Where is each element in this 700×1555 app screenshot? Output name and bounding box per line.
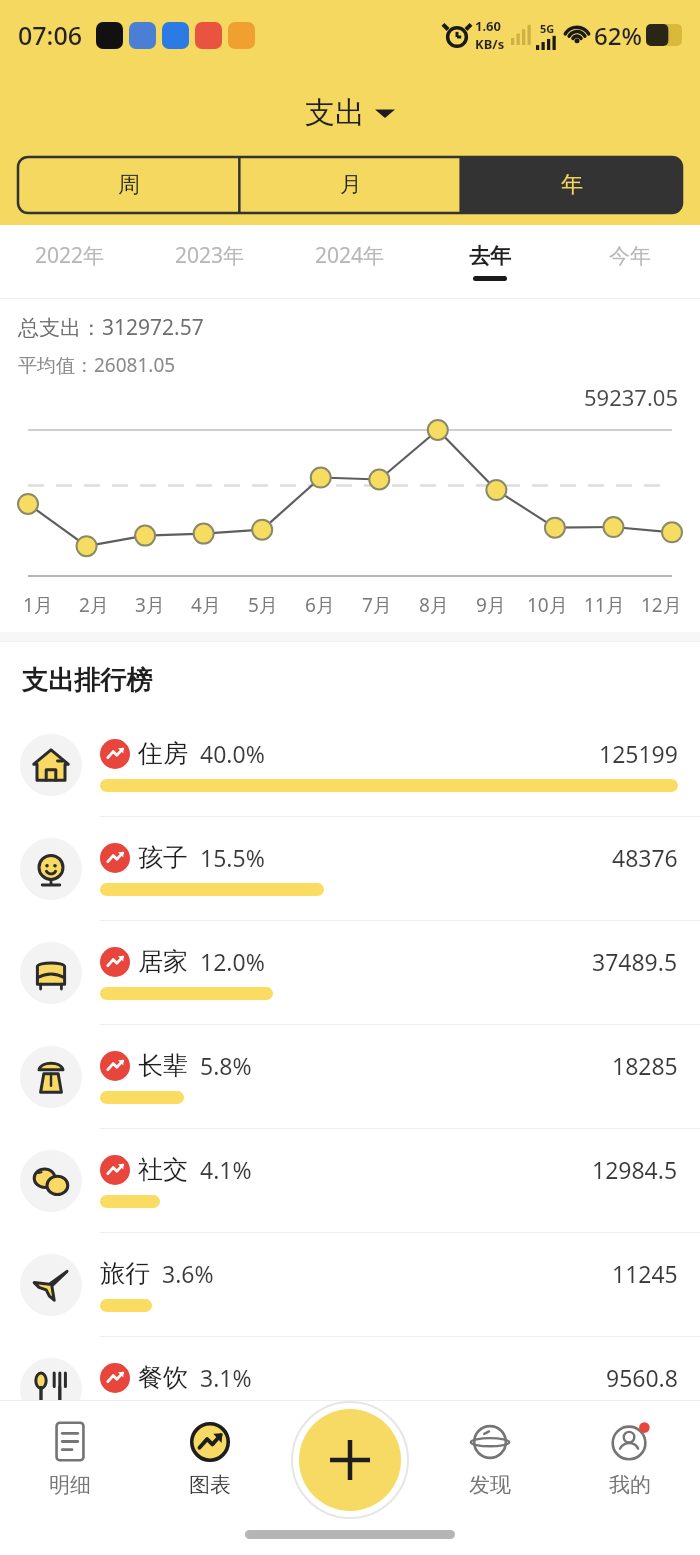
- staticText: 餐饮: [138, 1362, 188, 1393]
- staticText: 3.1%: [200, 1362, 252, 1393]
- staticText: 去年: [469, 243, 511, 269]
- staticText: 我的: [609, 1472, 651, 1498]
- staticText: 孩子: [138, 842, 188, 873]
- staticText: 12月: [641, 592, 682, 618]
- button[interactable]: 长辈: [0, 1025, 700, 1128]
- staticText: 平均值：26081.05: [18, 352, 176, 378]
- staticText: 年: [561, 171, 583, 199]
- staticText: 5G: [540, 21, 555, 36]
- button[interactable]: 支出: [0, 94, 700, 132]
- button[interactable]: 图表: [140, 1400, 280, 1535]
- staticText: 12984.5: [592, 1154, 678, 1185]
- staticText: 1月: [23, 592, 53, 618]
- button[interactable]: 记账: [280, 1400, 420, 1535]
- staticText: 月: [340, 171, 362, 199]
- staticText: 37489.5: [592, 946, 678, 977]
- staticText: 今年: [609, 243, 651, 269]
- staticText: 11245: [612, 1258, 678, 1289]
- staticText: 59237.05: [584, 382, 678, 412]
- staticText: 支出: [305, 94, 365, 132]
- staticText: 07:06: [18, 18, 83, 52]
- button[interactable]: 我的: [560, 1400, 700, 1535]
- staticText: 4月: [191, 592, 221, 618]
- staticText: 8月: [419, 592, 449, 618]
- staticText: 48376: [612, 842, 678, 873]
- staticText: 总支出：312972.57: [18, 313, 204, 342]
- button[interactable]: 2023年: [140, 225, 280, 298]
- button[interactable]: 社交: [0, 1129, 700, 1232]
- staticText: 旅行: [100, 1258, 150, 1289]
- staticText: 11月: [584, 592, 625, 618]
- staticText: 发现: [469, 1472, 511, 1498]
- button[interactable]: 月: [240, 157, 461, 213]
- button[interactable]: 发现: [420, 1400, 560, 1535]
- staticText: 社交: [138, 1154, 188, 1185]
- staticText: 明细: [49, 1472, 91, 1498]
- staticText: 长辈: [138, 1050, 188, 1081]
- button[interactable]: 明细: [0, 1400, 140, 1535]
- staticText: 1.60: [475, 17, 501, 35]
- staticText: 支出排行榜: [22, 664, 152, 697]
- button[interactable]: 孩子: [0, 817, 700, 920]
- staticText: 图表: [189, 1472, 231, 1498]
- button[interactable]: 餐饮: [0, 1337, 700, 1440]
- button[interactable]: 2022年: [0, 225, 140, 298]
- staticText: 2024年: [315, 241, 385, 270]
- staticText: 3.6%: [162, 1258, 214, 1289]
- button[interactable]: 记账: [299, 1409, 401, 1511]
- staticText: 40.0%: [200, 738, 265, 769]
- staticText: 住房: [138, 738, 188, 769]
- button[interactable]: 年: [461, 157, 682, 213]
- staticText: 2022年: [35, 241, 105, 270]
- staticText: 5月: [248, 592, 278, 618]
- button[interactable]: 今年: [560, 225, 700, 298]
- staticText: 12.0%: [200, 946, 265, 977]
- button[interactable]: 2024年: [280, 225, 420, 298]
- staticText: 记账: [329, 1472, 371, 1498]
- staticText: 9月: [476, 592, 506, 618]
- staticText: 18285: [612, 1050, 678, 1081]
- staticText: 4.1%: [200, 1154, 252, 1185]
- staticText: 9560.8: [606, 1362, 678, 1393]
- staticText: 5.8%: [200, 1050, 252, 1081]
- staticText: 125199: [599, 738, 678, 769]
- staticText: 7月: [362, 592, 392, 618]
- staticText: 62%: [594, 19, 642, 52]
- staticText: KB/s: [475, 35, 505, 53]
- staticText: 2月: [79, 592, 109, 618]
- staticText: 3月: [135, 592, 165, 618]
- button[interactable]: 去年: [420, 225, 560, 298]
- staticText: 2023年: [175, 241, 245, 270]
- button[interactable]: 旅行: [0, 1233, 700, 1336]
- staticText: 居家: [138, 946, 188, 977]
- staticText: 10月: [527, 592, 568, 618]
- button[interactable]: 周: [18, 157, 240, 213]
- staticText: 周: [118, 171, 140, 199]
- staticText: 15.5%: [200, 842, 265, 873]
- staticText: 6月: [305, 592, 335, 618]
- button[interactable]: 居家: [0, 921, 700, 1024]
- button[interactable]: 住房: [0, 713, 700, 816]
